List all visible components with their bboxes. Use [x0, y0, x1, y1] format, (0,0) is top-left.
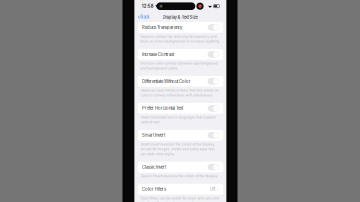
- staticText: Replaces user interface items that rely …: [140, 89, 218, 97]
- button[interactable]: Differentiate Without Color: [134, 76, 226, 87]
- staticText: Classic Invert: [142, 165, 166, 170]
- staticText: Back: [140, 15, 149, 20]
- staticText: Reduce Transparency: [142, 25, 182, 30]
- staticText: Smart Invert reverses the colors of the …: [140, 142, 215, 156]
- button[interactable]: Prefer Horizontal Text: [134, 103, 226, 114]
- staticText: Increase color contrast between app fore…: [140, 62, 217, 70]
- staticText: Increase Contrast: [142, 52, 174, 57]
- staticText: Color filters can be useful for users wh…: [140, 196, 219, 202]
- button[interactable]: Back: [134, 13, 152, 22]
- staticText: Smart Invert: [142, 133, 165, 138]
- staticText: Prefer Horizontal Text: [142, 106, 183, 111]
- staticText: 12:58: [142, 4, 154, 9]
- button[interactable]: Reduce Transparency: [134, 22, 226, 33]
- staticText: ›: [216, 187, 219, 192]
- staticText: Improve contrast by reducing transparenc…: [140, 35, 220, 43]
- staticText: Off: [210, 187, 216, 192]
- staticText: Classic Invert reverses the colors of th…: [140, 174, 218, 178]
- staticText: Display & Text Size: [162, 14, 198, 20]
- staticText: Color Filters: [142, 187, 166, 192]
- button[interactable]: Increase Contrast: [134, 49, 226, 60]
- button[interactable]: Color Filters: [134, 184, 226, 195]
- button[interactable]: Smart Invert: [134, 130, 226, 141]
- staticText: Prefer horizontal text in languages that…: [140, 115, 215, 124]
- button[interactable]: Classic Invert: [134, 162, 226, 172]
- staticText: Differentiate Without Color: [142, 79, 191, 84]
